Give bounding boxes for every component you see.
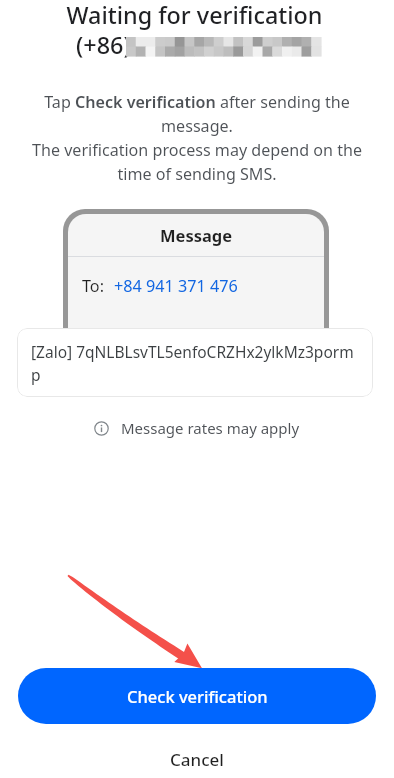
staticText: +84 941 371 476 <box>114 275 238 297</box>
staticText: [Zalo] 7qNLBLsvTL5enfoCRZHx2ylkMz3porm p <box>31 341 354 386</box>
staticText: (+86) <box>76 29 131 61</box>
staticText: Message <box>160 224 233 246</box>
staticText: Cancel <box>170 748 224 771</box>
staticText: Message rates may apply <box>121 418 300 438</box>
button[interactable]: Check verification <box>18 668 376 724</box>
staticText: Check verification <box>127 685 268 707</box>
staticText: To: <box>82 275 104 297</box>
staticText: Tap Check verification after sending the… <box>21 91 373 185</box>
staticText: Waiting for verification <box>66 0 323 31</box>
other: Arrow pointing at Check verification <box>0 0 394 778</box>
button[interactable]: Cancel <box>148 744 246 775</box>
